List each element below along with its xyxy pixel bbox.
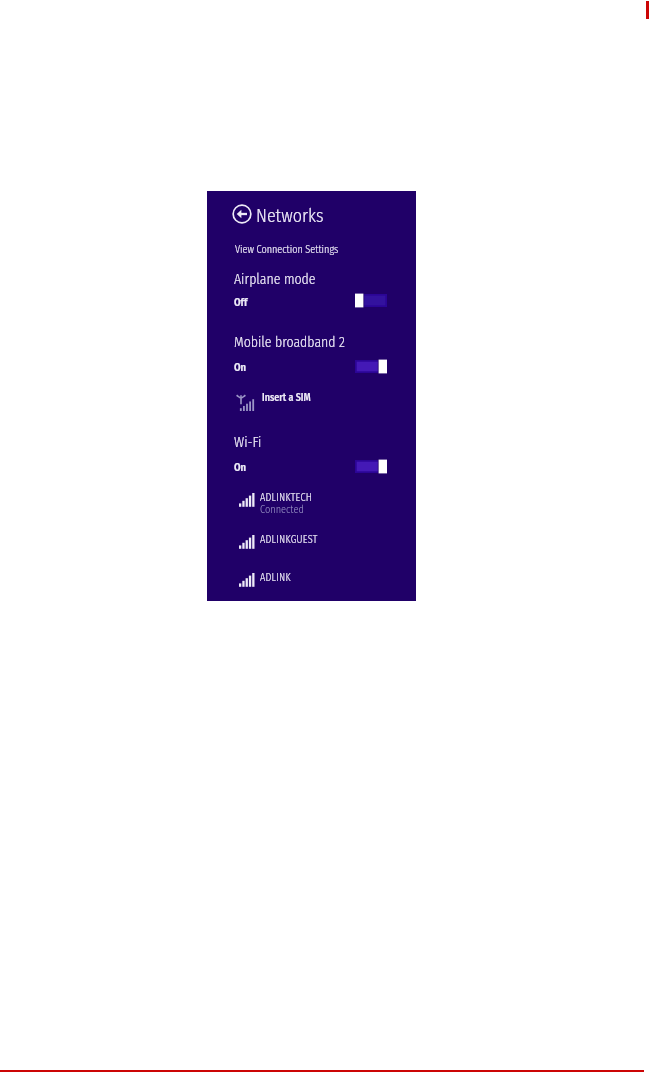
staticText: On [234,361,247,374]
button[interactable]: View Connection Settings [233,241,343,257]
staticText: Networks [256,205,324,227]
button[interactable]: Wi-Fi on [355,460,387,473]
staticText: Off [234,296,248,309]
staticText: View Connection Settings [235,243,339,255]
staticText: Connected [260,503,304,515]
button[interactable]: ADLINKTECH [231,491,391,517]
staticText: Airplane mode [234,271,316,288]
staticText: ADLINKGUEST [260,533,318,545]
staticText: ADLINKTECH [260,491,313,503]
button[interactable]: Mobile broadband 2 on [355,360,387,373]
staticText: Insert a SIM [262,392,311,404]
button[interactable]: ADLINK [231,571,391,589]
button[interactable]: Insert a SIM [231,390,351,412]
button[interactable]: Airplane mode off [355,294,387,307]
staticText: Mobile broadband 2 [234,334,345,351]
button[interactable]: ADLINKGUEST [231,533,391,551]
staticText: Wi-Fi [234,434,262,451]
staticText: On [234,461,247,474]
button[interactable]: Networks, back [231,199,353,227]
staticText: ADLINK [260,571,291,583]
